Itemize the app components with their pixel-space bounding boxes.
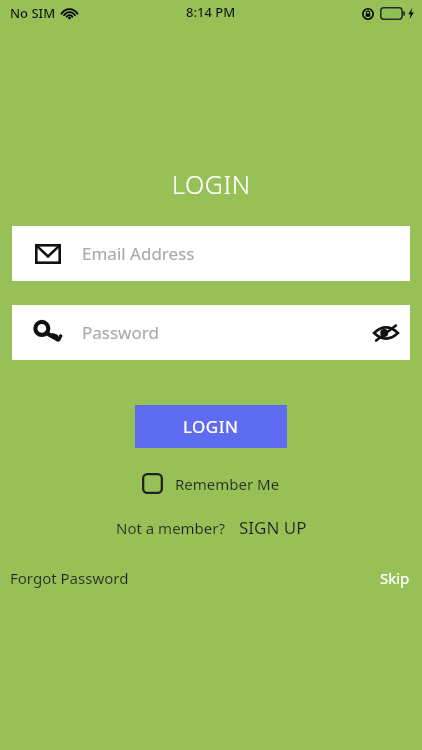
button[interactable]: Password [12,305,410,360]
staticText: Skip [380,568,410,588]
button[interactable]: LOGIN [135,405,287,448]
staticText: SIGN UP [239,516,307,539]
button[interactable]: Skip [380,568,410,588]
button[interactable]: Show password [362,309,410,357]
staticText: Not a member? [116,518,226,538]
button[interactable]: Remember Me [142,473,280,494]
staticText: Email Address [82,242,195,265]
staticText: 8:14 PM [186,3,236,21]
staticText: LOGIN [172,167,251,201]
button[interactable]: Forgot Password [10,568,129,588]
button[interactable]: SIGN UP [239,516,307,539]
staticText: No SIM [10,4,56,22]
staticText: LOGIN [183,415,239,438]
staticText: Remember Me [175,474,280,494]
staticText: Forgot Password [10,568,129,588]
button[interactable]: Email Address [12,226,410,281]
staticText: Password [82,321,159,344]
